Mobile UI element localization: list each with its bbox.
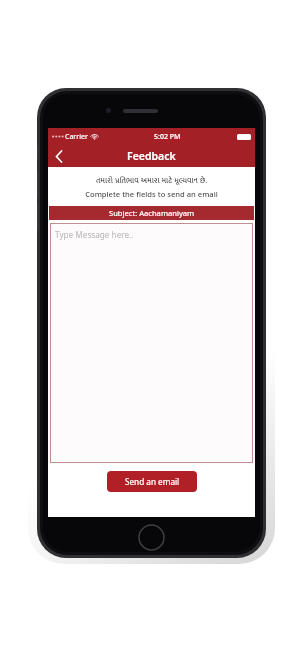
button[interactable]: Back — [48, 145, 70, 167]
button[interactable]: Subject: Aachamaniyam — [49, 206, 254, 220]
staticText: Carrier — [65, 132, 88, 142]
button[interactable]: Send an email — [107, 471, 197, 492]
staticText: 5:02 PM — [154, 132, 181, 142]
staticText: Subject: Aachamaniyam — [109, 208, 195, 218]
staticText: Feedback — [127, 149, 176, 163]
staticText: Complete the fields to send an email — [48, 189, 255, 199]
staticText: Send an email — [125, 476, 180, 487]
button[interactable]: Type Message here.. — [50, 223, 253, 463]
staticText: Type Message here.. — [55, 229, 134, 240]
staticText: તમારો પ્રતિભાવ અમારા માટે મૂલ્યવાન છે. — [48, 174, 255, 187]
